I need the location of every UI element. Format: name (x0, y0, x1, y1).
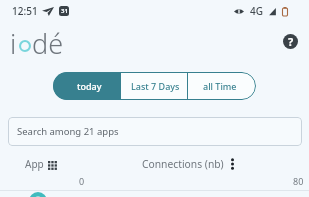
staticText: App (25, 157, 44, 171)
staticText: 0 (79, 175, 85, 187)
staticText: i (10, 25, 17, 62)
button[interactable]: Help (283, 34, 298, 49)
staticText: today (77, 80, 102, 92)
staticText: dé (32, 25, 64, 62)
staticText: Connections (nb) (142, 157, 224, 171)
staticText: all Time (203, 80, 237, 92)
button[interactable]: all Time (188, 72, 256, 100)
staticText: 4G (250, 4, 263, 18)
staticText: ? (288, 34, 294, 49)
button[interactable]: Last 7 Days (121, 72, 187, 100)
staticText: 31 (61, 7, 68, 15)
button[interactable]: Connections (nb) (142, 157, 234, 171)
staticText: 12:51 (12, 4, 38, 18)
button[interactable]: today (53, 72, 121, 100)
staticText: 80 (293, 175, 304, 187)
button[interactable]: Search among 21 apps (8, 117, 302, 146)
button[interactable]: App (25, 157, 57, 171)
staticText: Last 7 Days (131, 80, 180, 92)
staticText: Search among 21 apps (17, 125, 119, 138)
